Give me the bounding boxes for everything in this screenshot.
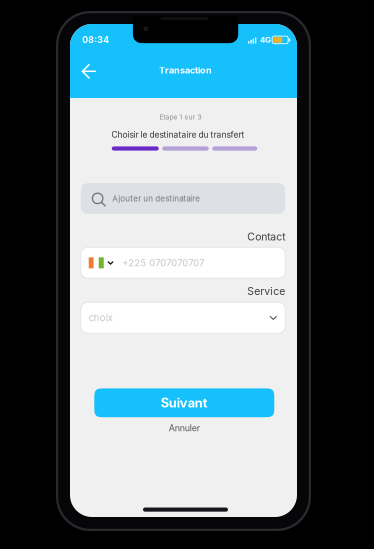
staticText: Service bbox=[247, 285, 285, 297]
button[interactable]: Suivant bbox=[94, 388, 274, 417]
staticText: 08:34 bbox=[82, 35, 109, 45]
staticText: Annuler bbox=[169, 423, 200, 433]
button[interactable]: choix bbox=[81, 302, 285, 333]
staticText: Etape 1 sur 3 bbox=[159, 113, 201, 121]
button[interactable]: Ajouter un destinataire bbox=[81, 183, 285, 214]
staticText: choix bbox=[89, 312, 113, 323]
staticText: Contact bbox=[247, 230, 285, 243]
button[interactable]: +225 0707070707 bbox=[81, 247, 285, 278]
staticText: Transaction bbox=[159, 65, 212, 76]
button[interactable]: Back bbox=[76, 59, 102, 83]
staticText: Choisir le destinataire du transfert bbox=[111, 130, 244, 140]
staticText: Suivant bbox=[161, 395, 208, 411]
staticText: +225 0707070707 bbox=[122, 257, 204, 268]
staticText: Ajouter un destinataire bbox=[112, 194, 200, 203]
button[interactable]: Annuler bbox=[154, 422, 214, 433]
staticText: 4G bbox=[260, 35, 271, 45]
